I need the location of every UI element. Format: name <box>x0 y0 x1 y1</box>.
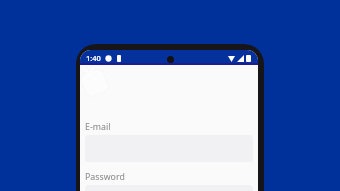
staticText: E-mail <box>85 121 111 133</box>
staticText: Password <box>85 171 125 183</box>
button[interactable]: Password <box>80 171 258 191</box>
other: App notification <box>117 55 121 62</box>
staticText: 1:40 <box>86 53 101 63</box>
button[interactable]: E-mail <box>80 121 258 162</box>
other: Wi-Fi <box>228 55 235 62</box>
other: Mobile signal <box>237 55 244 62</box>
other: Notification <box>105 55 112 62</box>
other: Battery <box>246 55 251 62</box>
